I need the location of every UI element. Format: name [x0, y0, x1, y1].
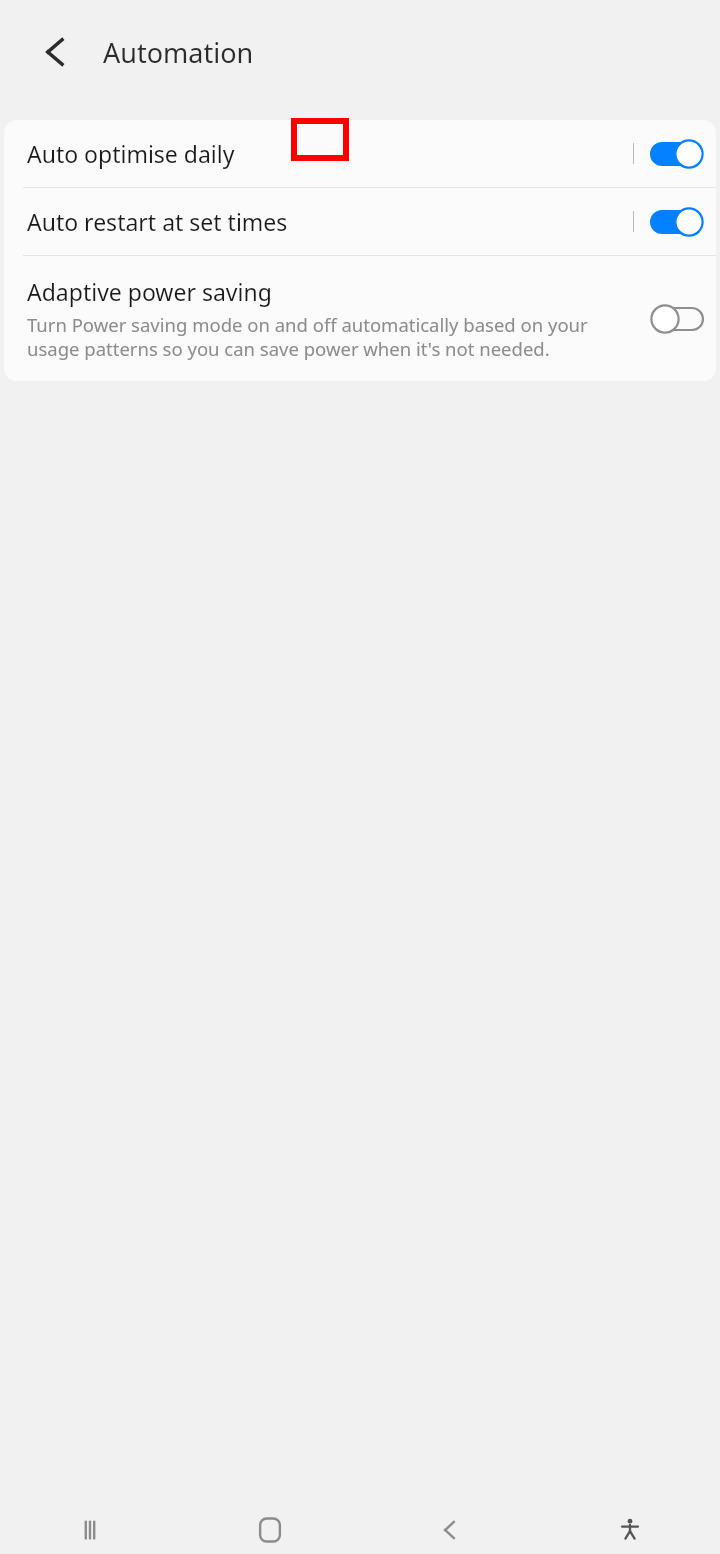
button[interactable]: Off: [650, 304, 704, 334]
button[interactable]: Auto optimise daily: [4, 120, 716, 187]
staticText: Adaptive power saving: [27, 276, 272, 307]
button[interactable]: Home: [180, 1506, 360, 1553]
button[interactable]: Accessibility: [540, 1506, 720, 1553]
staticText: Turn Power saving mode on and off automa…: [27, 312, 634, 361]
button[interactable]: Back: [360, 1506, 540, 1553]
staticText: Auto optimise daily: [27, 138, 235, 169]
button[interactable]: On: [650, 139, 704, 169]
button[interactable]: Adaptive power saving: [4, 256, 716, 381]
button[interactable]: On: [650, 207, 704, 237]
button[interactable]: Back: [24, 20, 88, 84]
button[interactable]: Recent apps: [0, 1506, 180, 1553]
staticText: Auto restart at set times: [27, 206, 288, 237]
staticText: Automation: [103, 34, 254, 71]
button[interactable]: Auto restart at set times: [4, 188, 716, 255]
